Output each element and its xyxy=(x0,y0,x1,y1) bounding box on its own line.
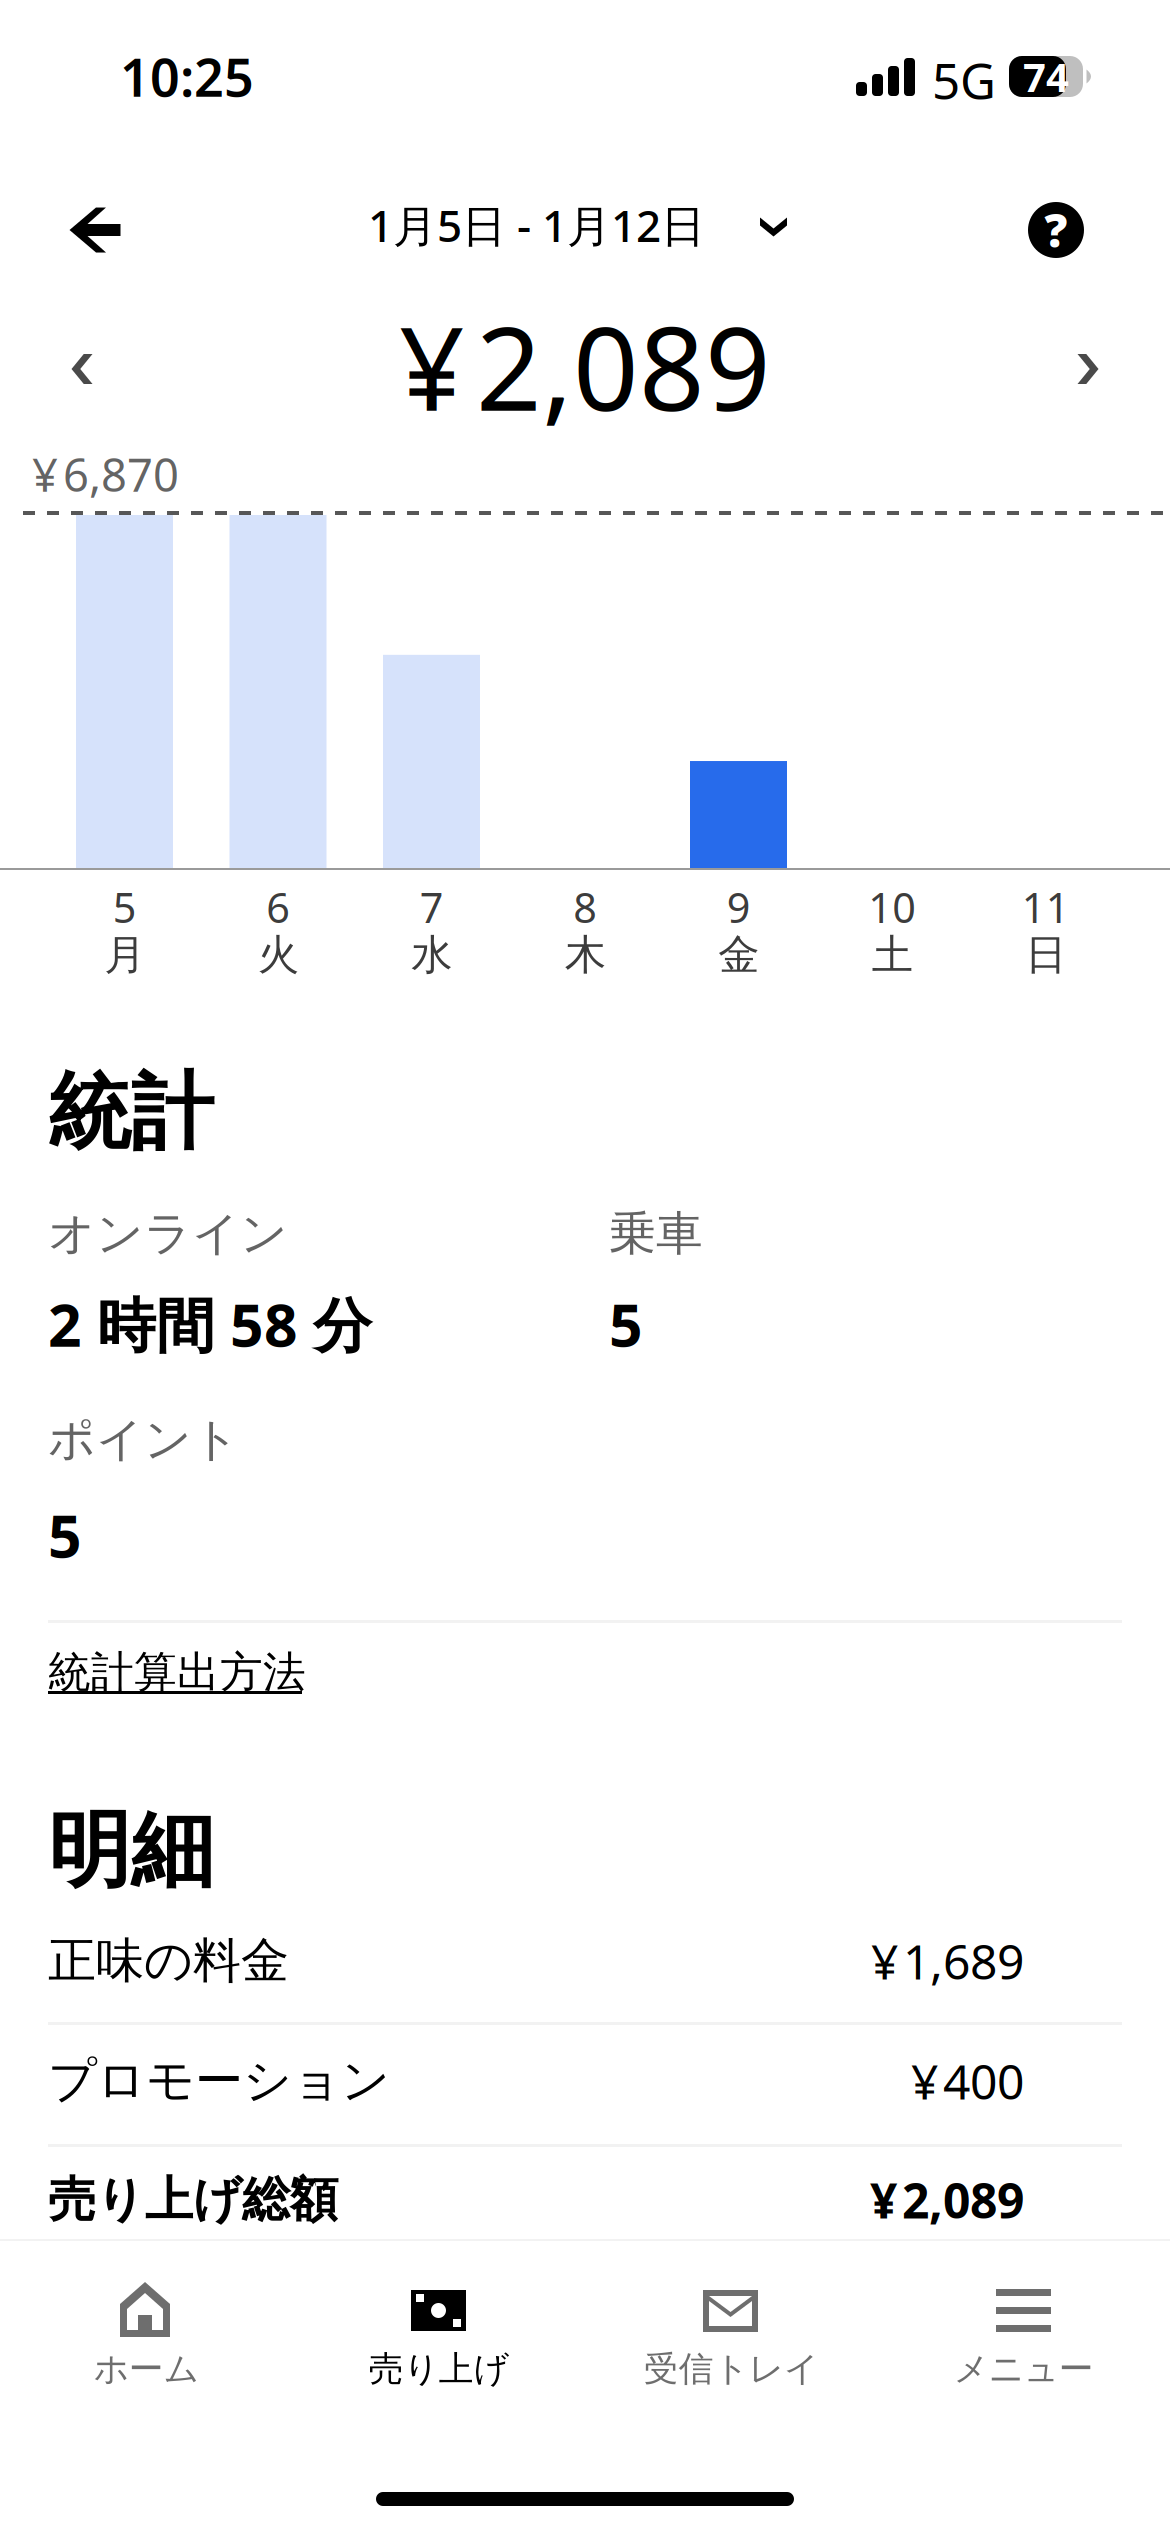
staticText: 10 xyxy=(868,880,916,934)
staticText: メニュー xyxy=(954,2348,1094,2390)
staticText: ? xyxy=(1044,200,1067,260)
button[interactable]: Next week xyxy=(1028,314,1148,424)
button[interactable]: Back xyxy=(35,175,155,285)
staticText: 5 xyxy=(48,1496,82,1574)
staticText: 木 xyxy=(565,930,606,980)
staticText: 10:25 xyxy=(120,42,254,111)
staticText: 11 xyxy=(1022,880,1070,934)
staticText: 売り上げ xyxy=(369,2348,509,2390)
staticText: 統計 xyxy=(48,1062,214,1163)
staticText: 日 xyxy=(1025,930,1066,980)
staticText: 金 xyxy=(718,930,759,980)
staticText: プロモーション xyxy=(48,2051,390,2110)
staticText: 明細 xyxy=(48,1800,214,1901)
button[interactable]: 受信トレイ xyxy=(585,2340,877,2398)
button[interactable]: Help xyxy=(1000,175,1112,285)
staticText: オンライン xyxy=(48,1205,288,1262)
button[interactable]: ホーム xyxy=(0,2340,292,2398)
staticText: 売り上げ総額 xyxy=(48,2170,338,2229)
button[interactable]: メニュー xyxy=(877,2340,1170,2398)
staticText: ¥ 1,689 xyxy=(871,1929,1024,1993)
staticText: 正味の料金 xyxy=(48,1931,289,1990)
staticText: 土 xyxy=(872,930,913,980)
staticText: 5 xyxy=(609,1285,643,1363)
staticText: 74 xyxy=(1023,50,1069,103)
button[interactable]: 1月5日 - 1月12日 xyxy=(354,174,801,276)
staticText: ¥ 400 xyxy=(911,2049,1024,2113)
staticText: 水 xyxy=(411,930,452,980)
staticText: 火 xyxy=(258,930,299,980)
staticText: 2 時間 58 分 xyxy=(48,1285,372,1363)
staticText: 5 xyxy=(113,880,137,934)
button[interactable]: 売り上げ xyxy=(292,2340,585,2398)
staticText: ホーム xyxy=(94,2348,199,2390)
staticText: ¥ 6,870 xyxy=(32,444,179,504)
staticText: 受信トレイ xyxy=(644,2348,819,2390)
staticText: 乗車 xyxy=(609,1205,703,1262)
staticText: 6 xyxy=(266,880,290,934)
staticText: 統計算出方法 xyxy=(48,1646,306,1698)
staticText: ¥ 2,089 xyxy=(870,2168,1024,2232)
button[interactable]: 統計算出方法 xyxy=(48,1634,348,1720)
staticText: 月 xyxy=(104,930,145,980)
staticText: 7 xyxy=(420,880,444,934)
staticText: 8 xyxy=(573,880,597,934)
staticText: 1月5日 - 1月12日 xyxy=(368,196,705,254)
button[interactable]: Previous week xyxy=(22,314,142,424)
staticText: 5G xyxy=(932,47,996,112)
staticText: ¥ 2,089 xyxy=(399,290,771,442)
staticText: 9 xyxy=(727,880,751,934)
staticText: ポイント xyxy=(48,1411,240,1468)
